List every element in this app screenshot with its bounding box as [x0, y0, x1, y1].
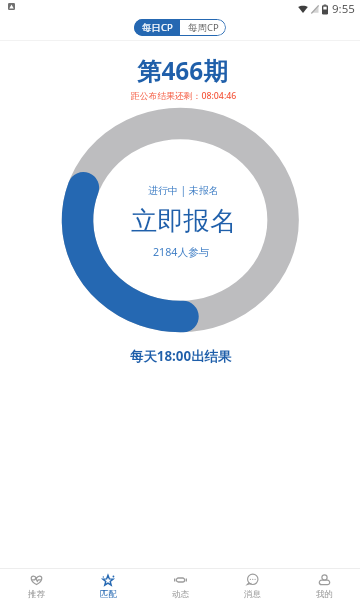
button[interactable]: 推荐 — [0, 569, 72, 600]
button[interactable]: 匹配 — [72, 569, 144, 600]
staticText: 2184人参与 — [153, 245, 210, 260]
staticText: 动态 — [172, 589, 189, 600]
staticText: 每天18:00出结果 — [130, 347, 232, 365]
staticText: 消息 — [244, 589, 261, 600]
button[interactable]: 动态 — [144, 569, 216, 600]
staticText: 进行中 | 未报名 — [148, 183, 219, 197]
button[interactable]: 每日CP — [134, 19, 180, 36]
button[interactable]: 消息 — [216, 569, 288, 600]
button[interactable]: 我的 — [288, 569, 360, 600]
staticText: 9:55 — [332, 1, 355, 17]
staticText: 立即报名 — [131, 205, 237, 238]
staticText: 距公布结果还剩：08:04:46 — [131, 90, 237, 102]
staticText: 推荐 — [28, 589, 45, 600]
staticText: 我的 — [316, 589, 333, 600]
staticText: 每日CP — [142, 21, 173, 34]
staticText: 第466期 — [137, 54, 228, 87]
staticText: 匹配 — [100, 589, 117, 600]
staticText: 每周CP — [188, 21, 219, 34]
button[interactable]: 每周CP — [180, 19, 226, 36]
